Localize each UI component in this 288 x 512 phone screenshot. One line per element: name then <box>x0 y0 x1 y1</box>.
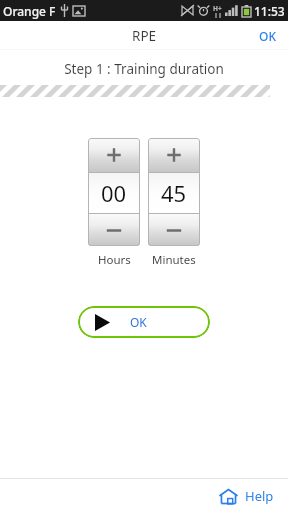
button[interactable]: Decrease Minutes <box>148 214 200 246</box>
staticText: Minutes <box>152 252 196 268</box>
staticText: 00 <box>101 178 127 208</box>
button[interactable]: Increase Hours <box>88 138 140 172</box>
staticText: Hours <box>98 252 131 268</box>
button[interactable]: OK <box>247 22 288 50</box>
staticText: Help <box>245 487 274 505</box>
staticText: Orange F <box>3 3 56 19</box>
staticText: 11:53 <box>254 3 285 19</box>
staticText: OK <box>130 314 147 330</box>
staticText: H+ <box>213 4 222 13</box>
button[interactable]: Increase Minutes <box>148 138 200 172</box>
staticText: Step 1 : Training duration <box>0 60 288 78</box>
staticText: RPE <box>132 27 157 45</box>
staticText: OK <box>259 28 276 44</box>
button[interactable]: Help <box>211 483 282 509</box>
staticText: 45 <box>161 178 187 208</box>
button[interactable]: OK <box>78 306 210 338</box>
button[interactable]: Decrease Hours <box>88 214 140 246</box>
